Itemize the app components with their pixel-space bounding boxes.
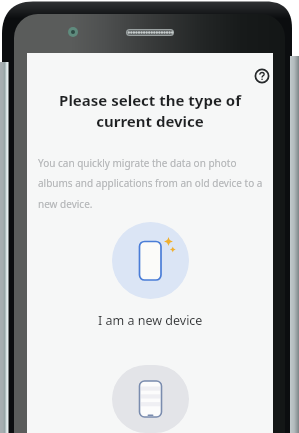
button[interactable]: Help [251, 65, 273, 87]
button[interactable]: I am a new device [27, 222, 273, 329]
staticText: You can quickly migrate the data on phot… [38, 156, 265, 211]
staticText: Please select the type of current device [35, 90, 265, 132]
staticText: I am a new device [98, 312, 203, 329]
button[interactable] [27, 365, 273, 433]
